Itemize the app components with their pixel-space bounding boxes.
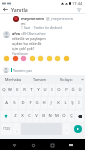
button[interactable]: H bbox=[41, 97, 47, 109]
button[interactable]: G bbox=[34, 97, 40, 109]
button[interactable]: More suggestions bbox=[79, 75, 85, 83]
staticText: V bbox=[35, 113, 38, 119]
button[interactable]: Ç bbox=[68, 110, 74, 122]
button[interactable]: S bbox=[11, 97, 18, 109]
staticText: Tamam bbox=[33, 77, 47, 82]
button[interactable]: Hide keyboard bbox=[66, 140, 76, 150]
button[interactable]: Emoji bbox=[54, 55, 60, 61]
button[interactable]: A bbox=[3, 97, 10, 109]
button[interactable]: X bbox=[19, 110, 25, 122]
button[interactable]: M bbox=[54, 110, 60, 122]
button[interactable]: J bbox=[48, 97, 54, 109]
button[interactable]: U bbox=[42, 84, 48, 96]
staticText: Ü bbox=[78, 87, 82, 93]
staticText: ?123 bbox=[3, 127, 10, 131]
button[interactable]: Back bbox=[9, 140, 19, 150]
button[interactable]: R bbox=[21, 84, 27, 96]
staticText: meymenem bbox=[21, 16, 45, 21]
staticText: Yanıtla bbox=[11, 6, 28, 13]
staticText: Y bbox=[37, 87, 40, 93]
staticText: C bbox=[28, 113, 31, 119]
button[interactable]: ?123 bbox=[1, 123, 12, 135]
staticText: Ö bbox=[62, 113, 66, 119]
button[interactable]: Tamam bbox=[27, 75, 53, 83]
button[interactable]: Emoji bbox=[12, 55, 18, 61]
staticText: D bbox=[21, 100, 25, 106]
staticText: F bbox=[29, 100, 32, 106]
button[interactable]: P bbox=[63, 84, 69, 96]
button[interactable]: V bbox=[33, 110, 39, 122]
button[interactable]: Ü bbox=[77, 84, 83, 96]
staticText: Yanıtını yaz bbox=[13, 68, 32, 73]
button[interactable]: İ bbox=[76, 97, 82, 109]
button[interactable]: , bbox=[13, 123, 20, 135]
staticText: afva bbox=[12, 31, 20, 36]
button[interactable]: L bbox=[62, 97, 68, 109]
button[interactable]: Merhaba bbox=[0, 75, 27, 83]
button[interactable]: Backspace bbox=[75, 110, 84, 122]
staticText: N bbox=[48, 113, 52, 119]
staticText: · Twitter for Android bbox=[32, 26, 63, 30]
staticText: Ç bbox=[70, 113, 73, 119]
button[interactable]: Ğ bbox=[70, 84, 76, 96]
staticText: K bbox=[57, 100, 60, 106]
button[interactable]: D bbox=[19, 97, 26, 109]
staticText: Merhaba bbox=[5, 77, 22, 82]
button[interactable]: Home bbox=[28, 140, 38, 150]
staticText: M bbox=[55, 113, 59, 119]
button[interactable]: N bbox=[47, 110, 53, 122]
button[interactable]: Back bbox=[2, 6, 9, 13]
button[interactable]: Q bbox=[1, 84, 6, 96]
button[interactable]: E bbox=[14, 84, 20, 96]
button[interactable]: Emoji bbox=[3, 55, 9, 61]
button[interactable]: Emoji bbox=[37, 55, 43, 61]
button[interactable]: W bbox=[7, 84, 13, 96]
button[interactable]: Recents bbox=[47, 140, 57, 150]
button[interactable]: Emoji bbox=[46, 55, 52, 61]
staticText: etkinlik ve paylaşım açıktır bu etkinlik… bbox=[12, 36, 47, 51]
button[interactable]: Ö bbox=[61, 110, 67, 122]
staticText: mi bbox=[21, 21, 26, 26]
staticText: G bbox=[35, 100, 39, 106]
button[interactable]: Yanıtını yaz bbox=[3, 67, 82, 73]
button[interactable]: K bbox=[55, 97, 61, 109]
staticText: Kolaycı bbox=[60, 77, 73, 82]
button[interactable]: Emoji bbox=[20, 55, 26, 61]
staticText: H bbox=[42, 100, 46, 106]
button[interactable]: Kolaycı bbox=[53, 75, 79, 83]
staticText: U bbox=[43, 87, 47, 93]
staticText: W bbox=[8, 87, 12, 93]
staticText: Ş bbox=[71, 100, 74, 106]
staticText: 1 Saat bbox=[21, 26, 31, 30]
button[interactable]: Shift bbox=[1, 110, 11, 122]
button[interactable]: C bbox=[26, 110, 32, 122]
staticText: . bbox=[66, 127, 67, 132]
button[interactable]: T bbox=[28, 84, 34, 96]
staticText: B bbox=[42, 113, 45, 119]
staticText: Q bbox=[2, 87, 6, 93]
button[interactable]: O bbox=[56, 84, 62, 96]
staticText: @_meymenem bbox=[46, 16, 74, 21]
button[interactable]: Filter bbox=[75, 6, 82, 13]
staticText: I bbox=[51, 87, 53, 93]
staticText: Ğ bbox=[71, 87, 75, 93]
button[interactable]: Emoji bbox=[29, 55, 35, 61]
button[interactable]: I bbox=[49, 84, 55, 96]
staticText: S bbox=[13, 100, 16, 106]
staticText: O bbox=[57, 87, 61, 93]
staticText: Z bbox=[14, 113, 17, 119]
button[interactable]: Emoji bbox=[63, 55, 69, 61]
staticText: 17:44 bbox=[72, 1, 83, 6]
button[interactable]: Z bbox=[12, 110, 18, 122]
button[interactable]: B bbox=[40, 110, 46, 122]
button[interactable]: F bbox=[27, 97, 33, 109]
button[interactable]: Y bbox=[35, 84, 41, 96]
staticText: A bbox=[5, 100, 8, 106]
staticText: Yanıtlanan bbox=[12, 52, 28, 56]
button[interactable]: Send bbox=[71, 123, 84, 135]
staticText: E bbox=[16, 87, 19, 93]
button[interactable]: Ş bbox=[69, 97, 75, 109]
staticText: c8H Bunushev bbox=[21, 31, 46, 36]
